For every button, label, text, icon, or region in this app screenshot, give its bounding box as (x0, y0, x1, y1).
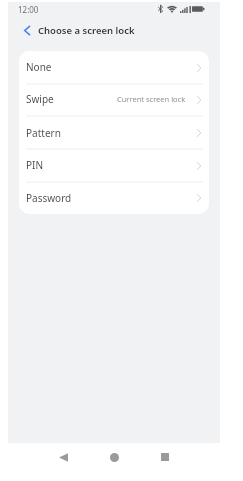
staticText: Swipe (26, 92, 54, 106)
staticText: Current screen lock (117, 94, 186, 104)
button[interactable]: Swipe (19, 84, 209, 116)
button[interactable]: Pattern (19, 116, 209, 149)
staticText: Password (26, 191, 72, 205)
staticText: Pattern (26, 126, 61, 140)
staticText: None (26, 60, 52, 74)
button[interactable]: Home (100, 443, 128, 471)
staticText: PIN (26, 158, 44, 172)
button[interactable]: Navigate up (8, 17, 36, 43)
button[interactable]: Back (49, 443, 77, 471)
button[interactable]: Password (19, 182, 209, 214)
staticText: Choose a screen lock (38, 24, 135, 37)
button[interactable]: PIN (19, 149, 209, 182)
button[interactable]: None (19, 51, 209, 84)
button[interactable]: Recent apps (151, 443, 179, 471)
staticText: 12:00 (18, 4, 39, 15)
